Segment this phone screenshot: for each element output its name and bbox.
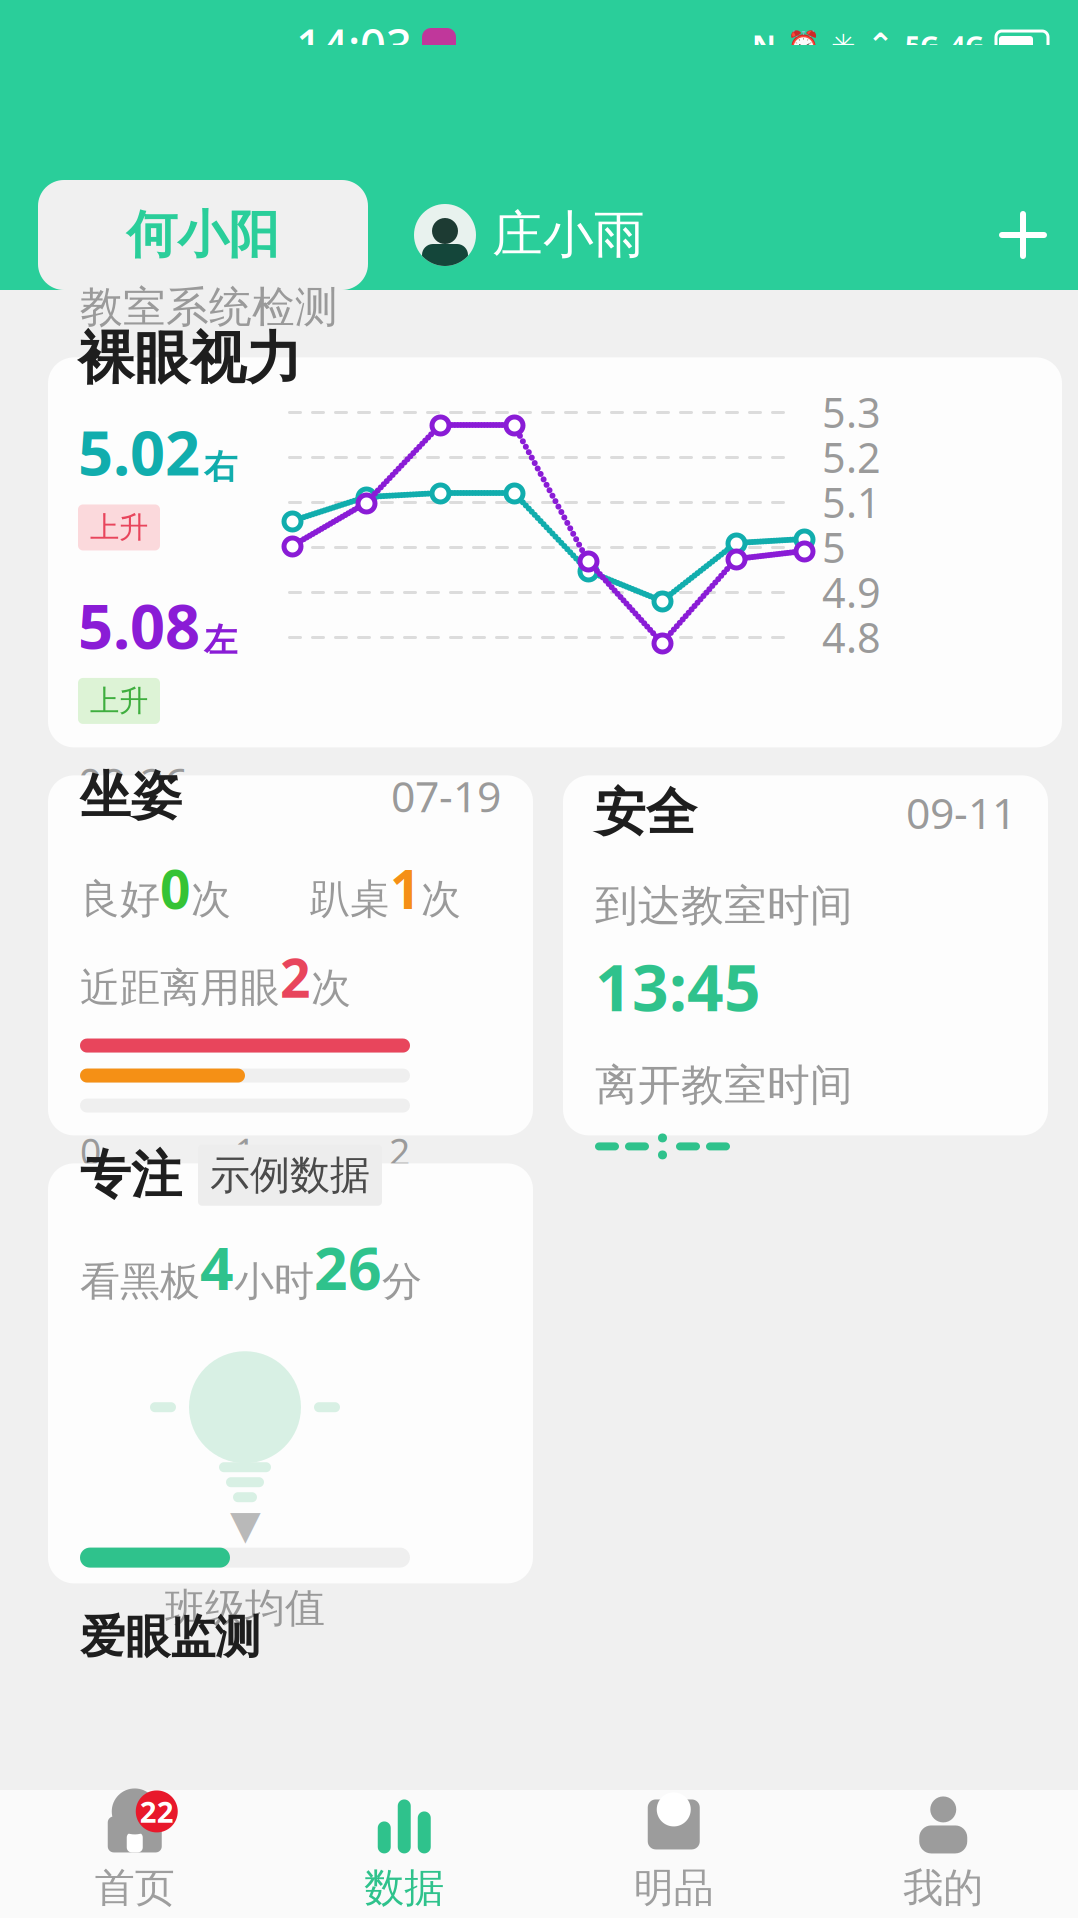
staticText: 14:03 [296, 15, 412, 75]
staticText: 5.02 [78, 411, 200, 492]
staticText: 2 [389, 1127, 410, 1176]
staticText: 26 [314, 1228, 382, 1306]
staticText: 0 [160, 853, 191, 924]
staticText: 07-19 [391, 767, 501, 824]
button[interactable]: 添加 [968, 180, 1078, 290]
staticText: 看黑板 [80, 1257, 200, 1306]
staticText: 0 [80, 1127, 101, 1176]
staticText: 班级均值 [165, 1584, 325, 1633]
button[interactable]: 22 [0, 1795, 269, 1912]
staticText: 裸眼视力 [78, 324, 302, 393]
staticText: 次 [421, 875, 461, 924]
staticText: 1 [390, 853, 421, 924]
staticText: 4 [200, 1228, 234, 1306]
staticText: 专注 [80, 1144, 182, 1206]
staticText: 何小阳 [126, 204, 279, 266]
staticText: N [752, 25, 776, 64]
staticText: 4.9 [822, 564, 881, 619]
staticText: 良好 [80, 875, 160, 924]
staticText: 右 [204, 446, 237, 487]
staticText: 次 [191, 875, 231, 924]
staticText: 2 [280, 942, 311, 1012]
button[interactable]: 数据 [269, 1795, 539, 1912]
staticText: 趴桌 [310, 875, 390, 924]
staticText: 安全 [595, 781, 697, 844]
staticText: 教室系统检测 [80, 281, 338, 333]
staticText: 13:45 [595, 944, 761, 1029]
staticText: 数据 [364, 1863, 444, 1912]
staticText: 5.1 [822, 474, 881, 529]
staticText: 庄小雨 [492, 204, 645, 266]
staticText: 上升 [90, 509, 148, 545]
staticText: ▼ [230, 1502, 261, 1548]
staticText: 示例数据 [210, 1151, 370, 1200]
staticText: 次 [311, 963, 351, 1012]
button[interactable]: 庄小雨 [368, 204, 645, 266]
staticText: 我的 [903, 1863, 983, 1912]
staticText: 5.3 [822, 384, 881, 439]
staticText: 4.8 [822, 609, 881, 664]
staticText: 22 [140, 1792, 174, 1831]
staticText: 左 [204, 620, 237, 661]
staticText: ✳ [831, 28, 856, 62]
staticText: 小时 [234, 1257, 314, 1306]
staticText: 爱眼监测 [80, 1609, 260, 1665]
staticText: 4G [950, 27, 984, 63]
staticText: 上升 [90, 683, 148, 719]
staticText: 5.2 [822, 429, 881, 484]
staticText: ⏰ [787, 30, 820, 60]
staticText: 5G [905, 27, 939, 63]
staticText: 09-26 [78, 754, 188, 811]
staticText: 坐姿 [80, 765, 182, 827]
button[interactable]: 何小阳 [0, 180, 368, 290]
staticText: 1 [234, 1127, 255, 1176]
staticText: 分 [382, 1257, 422, 1306]
staticText: 5 [822, 519, 846, 574]
staticText: ⌃ [867, 27, 894, 63]
staticText: 明品 [634, 1863, 714, 1912]
staticText: 5.08 [78, 584, 200, 666]
staticText: 到达教室时间 [595, 880, 853, 932]
button[interactable]: 我的 [808, 1795, 1078, 1912]
staticText: 首页 [95, 1863, 175, 1912]
staticText: 近距离用眼 [80, 963, 280, 1012]
staticText: 09-11 [906, 784, 1016, 841]
button[interactable]: 明品 [539, 1795, 808, 1912]
staticText: 离开教室时间 [595, 1059, 853, 1111]
